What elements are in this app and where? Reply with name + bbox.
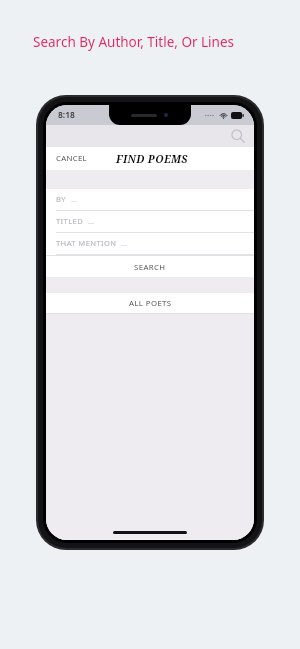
staticText: FIND POEMS [116, 152, 188, 166]
button[interactable]: Search [230, 128, 246, 144]
staticText: TITLED [56, 216, 84, 226]
staticText: SEARCH [134, 262, 166, 273]
staticText: ... [71, 194, 78, 204]
staticText: 8:18 [58, 109, 75, 121]
button[interactable]: BY [46, 189, 254, 211]
staticText: ... [88, 216, 95, 226]
staticText: ALL POETS [129, 298, 172, 309]
button[interactable]: SEARCH [46, 255, 254, 277]
button[interactable]: CANCEL [46, 149, 95, 168]
button[interactable]: THAT MENTION [46, 233, 254, 255]
button[interactable]: ALL POETS [46, 293, 254, 314]
button[interactable]: TITLED [46, 211, 254, 233]
staticText: CANCEL [56, 153, 87, 164]
staticText: ... [121, 238, 128, 248]
staticText: BY [56, 194, 67, 204]
staticText: THAT MENTION [56, 238, 117, 248]
staticText: Search By Author, Title, Or Lines [33, 33, 235, 51]
